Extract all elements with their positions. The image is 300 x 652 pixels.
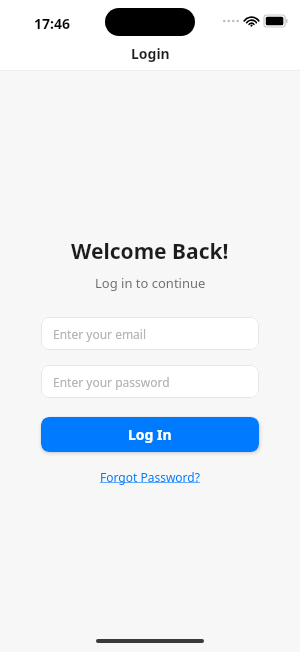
staticText: Login [131, 44, 170, 63]
staticText: Log in to continue [95, 274, 206, 292]
button[interactable]: Enter your email [41, 317, 259, 350]
staticText: 17:46 [34, 14, 70, 33]
button[interactable]: Forgot Password? [100, 469, 200, 485]
button[interactable]: Enter your password [41, 365, 259, 398]
staticText: Forgot Password? [100, 469, 200, 485]
staticText: Enter your email [53, 326, 147, 342]
button[interactable]: Log In [41, 417, 259, 452]
staticText: Enter your password [53, 374, 170, 390]
staticText: Welcome Back! [71, 237, 229, 266]
staticText: Log In [128, 425, 172, 444]
